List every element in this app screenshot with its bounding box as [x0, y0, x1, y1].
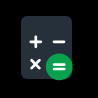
- button[interactable]: Calculator: [0, 0, 98, 98]
